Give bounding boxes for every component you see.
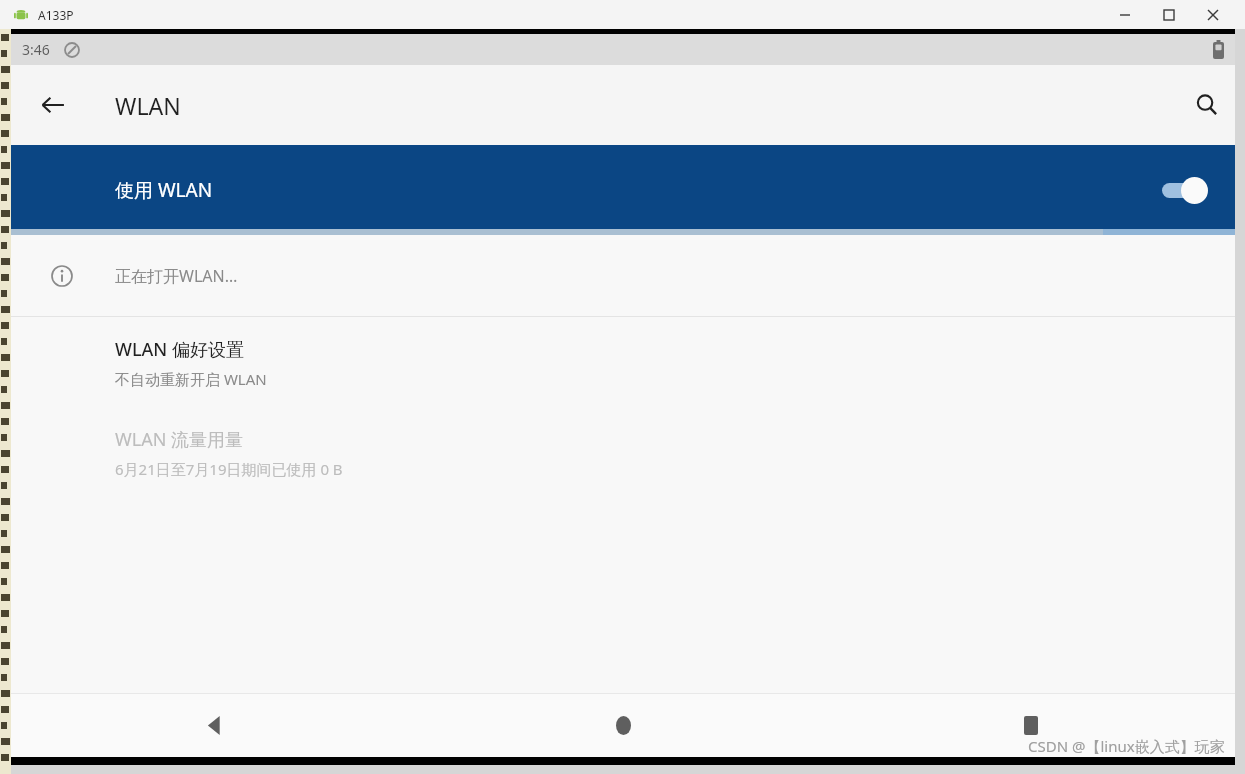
button[interactable]: Minimize (1103, 0, 1147, 29)
button[interactable]: Back (29, 81, 77, 129)
button[interactable]: WLAN 偏好设置 (11, 317, 1235, 409)
staticText: CSDN @【linux嵌入式】玩家 (1028, 736, 1225, 756)
staticText: WLAN (115, 90, 181, 121)
button[interactable]: Search (1183, 81, 1231, 129)
staticText: WLAN 偏好设置 (115, 337, 244, 362)
button[interactable]: Home (419, 694, 827, 757)
button[interactable]: Recents (827, 694, 1235, 757)
staticText: 6月21日至7月19日期间已使用 0 B (115, 459, 343, 479)
button[interactable]: Maximize (1147, 0, 1191, 29)
button[interactable]: 使用 WLAN (11, 145, 1235, 235)
button[interactable]: Back (11, 694, 419, 757)
staticText: 不自动重新开启 WLAN (115, 369, 267, 389)
staticText: 正在打开WLAN… (115, 265, 238, 287)
staticText: WLAN 流量用量 (115, 427, 244, 452)
button[interactable]: 正在打开WLAN… (11, 235, 1235, 316)
button[interactable]: WLAN 流量用量 (11, 409, 1235, 497)
staticText: 使用 WLAN (115, 177, 213, 203)
staticText: 3:46 (22, 40, 50, 59)
button[interactable]: Close (1191, 0, 1235, 29)
staticText: A133P (38, 7, 74, 23)
